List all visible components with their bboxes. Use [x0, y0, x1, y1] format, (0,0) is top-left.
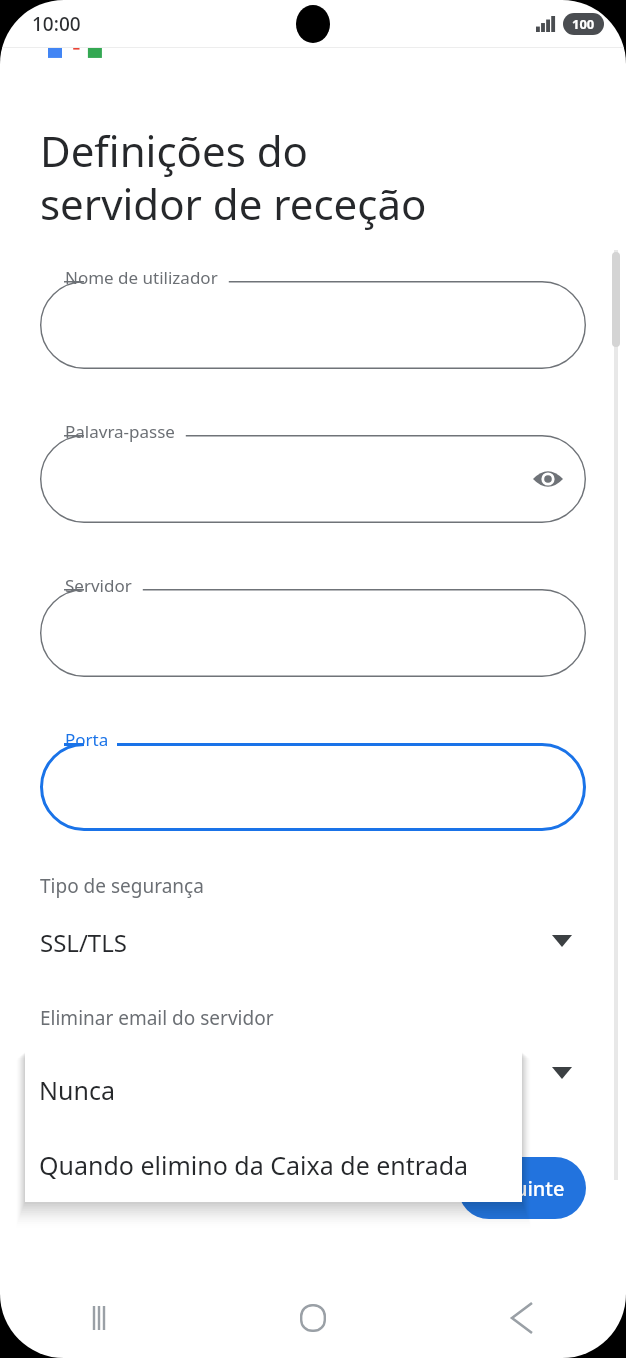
button[interactable]: Palavra-passe	[40, 419, 586, 523]
staticText: Seguinte	[480, 1175, 565, 1202]
staticText: Eliminar email do servidor	[40, 1005, 274, 1031]
staticText: Porta	[65, 728, 109, 751]
staticText: Nome de utilizador	[65, 266, 218, 289]
staticText: Nunca	[39, 1073, 115, 1107]
button[interactable]: Nunca	[25, 1052, 522, 1127]
button[interactable]: Início	[208, 1278, 417, 1358]
staticText: Servidor	[65, 574, 132, 597]
button[interactable]: Voltar	[417, 1278, 626, 1358]
button[interactable]: Nome de utilizador	[40, 265, 586, 369]
staticText: Definições do servidor de receção	[40, 122, 427, 232]
staticText: 10:00	[32, 11, 81, 37]
button[interactable]: Recentes	[0, 1278, 208, 1358]
button[interactable]: Quando elimino da Caixa de entrada	[25, 1127, 522, 1202]
staticText: Quando elimino da Caixa de entrada	[39, 1148, 469, 1182]
staticText: Tipo de segurança	[40, 873, 204, 899]
button[interactable]: Porta	[40, 727, 586, 831]
staticText: 100	[572, 15, 595, 33]
button[interactable]: Servidor	[40, 573, 586, 677]
staticText: Palavra-passe	[65, 420, 175, 443]
button[interactable]: Mostrar palavra-passe	[524, 455, 572, 503]
button[interactable]: Tipo de segurança	[0, 873, 626, 965]
staticText: SSL/TLS	[40, 926, 127, 959]
button[interactable]: Eliminar email do servidor	[0, 1005, 626, 1097]
button[interactable]: Seguinte	[458, 1157, 586, 1219]
